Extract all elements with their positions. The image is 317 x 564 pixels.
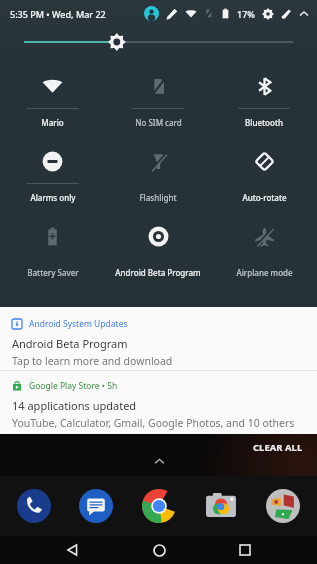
button[interactable]: Camera <box>201 486 241 526</box>
button[interactable]: Alarms only <box>0 138 105 213</box>
button[interactable]: User account <box>144 6 159 21</box>
button[interactable]: Airplane mode <box>211 213 317 288</box>
button[interactable]: Recent apps <box>231 536 259 564</box>
staticText: Android Beta Program <box>12 336 128 351</box>
staticText: Airplane mode <box>236 267 293 278</box>
button[interactable]: Auto-rotate <box>211 138 317 213</box>
button[interactable]: Battery Saver <box>0 213 105 288</box>
staticText: Mario <box>41 117 64 128</box>
staticText: 5:35 PM • Wed, Mar 22 <box>10 8 106 20</box>
button[interactable]: Back <box>58 536 86 564</box>
staticText: 14 applications updated <box>12 398 137 413</box>
staticText: Google Play Store • 5h <box>29 380 118 392</box>
button[interactable]: Phone <box>14 486 54 526</box>
button[interactable]: Android System Updates <box>0 307 317 370</box>
button[interactable]: Collapse notifications <box>150 452 168 470</box>
button[interactable]: CLEAR ALL <box>247 438 309 457</box>
staticText: Flashlight <box>139 192 177 203</box>
staticText: Battery Saver <box>27 267 79 278</box>
staticText: CLEAR ALL <box>253 441 303 454</box>
button[interactable] <box>0 27 317 57</box>
staticText: Alarms only <box>30 192 76 203</box>
staticText: Android Beta Program <box>115 267 201 278</box>
staticText: Bluetooth <box>245 117 283 128</box>
button[interactable]: Chrome <box>139 486 179 526</box>
staticText: Auto-rotate <box>242 192 287 203</box>
staticText: No SIM card <box>135 117 182 128</box>
button[interactable]: Google Play <box>263 486 303 526</box>
staticText: YouTube, Calculator, Gmail, Google Photo… <box>12 416 295 430</box>
button[interactable]: Bluetooth <box>211 63 317 138</box>
button[interactable]: Settings <box>261 7 275 21</box>
button[interactable]: Google Play Store • 5h <box>0 371 317 434</box>
staticText: 17% <box>237 8 255 20</box>
button[interactable]: Home <box>145 536 173 564</box>
button[interactable]: Android Beta Program <box>105 213 211 288</box>
button[interactable]: Flashlight <box>105 138 211 213</box>
button[interactable]: No SIM card <box>105 63 211 138</box>
button[interactable]: Collapse <box>297 7 311 21</box>
button[interactable]: Mario <box>0 63 105 138</box>
button[interactable]: Messages <box>76 486 116 526</box>
staticText: Android System Updates <box>29 318 128 330</box>
button[interactable]: Edit <box>165 7 179 21</box>
staticText: Tap to learn more and download <box>12 354 173 368</box>
